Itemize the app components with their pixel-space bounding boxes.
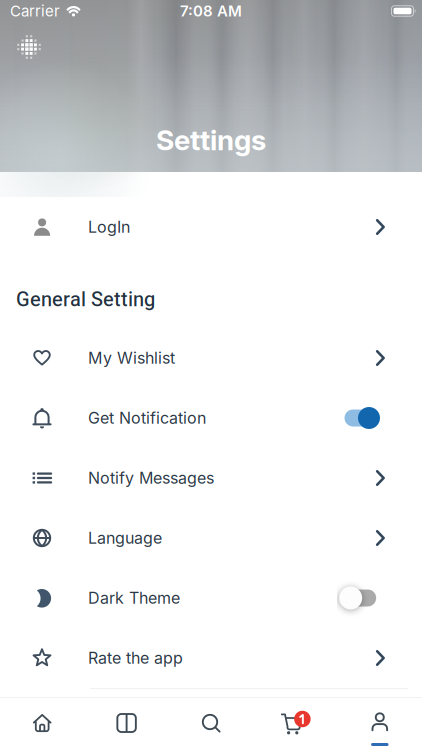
staticText: Get Notification (88, 408, 206, 428)
staticText: 7:08 AM (180, 2, 242, 20)
staticText: Language (88, 528, 162, 548)
button[interactable]: Language (0, 508, 422, 568)
button[interactable]: Cart (253, 698, 338, 750)
button[interactable]: On (343, 404, 380, 432)
button[interactable]: Home (0, 698, 84, 750)
button[interactable]: Get Notification (0, 388, 422, 448)
staticText: Notify Messages (88, 468, 214, 488)
button[interactable]: Search (169, 698, 253, 750)
staticText: Settings (156, 123, 266, 157)
button[interactable]: Off (343, 584, 380, 612)
button[interactable]: Profile (338, 698, 422, 750)
button[interactable]: Categories (84, 698, 169, 750)
button[interactable]: LogIn (0, 197, 422, 257)
staticText: Rate the app (88, 648, 183, 668)
button[interactable]: Dark Theme (0, 568, 422, 628)
button[interactable]: Rate the app (0, 628, 422, 688)
button[interactable]: Menu (0, 12, 58, 82)
staticText: Dark Theme (88, 588, 180, 608)
button[interactable]: My Wishlist (0, 328, 422, 388)
staticText: My Wishlist (88, 348, 175, 368)
button[interactable]: Notify Messages (0, 448, 422, 508)
staticText: Carrier (10, 2, 60, 20)
staticText: LogIn (88, 217, 130, 237)
staticText: General Setting (16, 285, 155, 315)
